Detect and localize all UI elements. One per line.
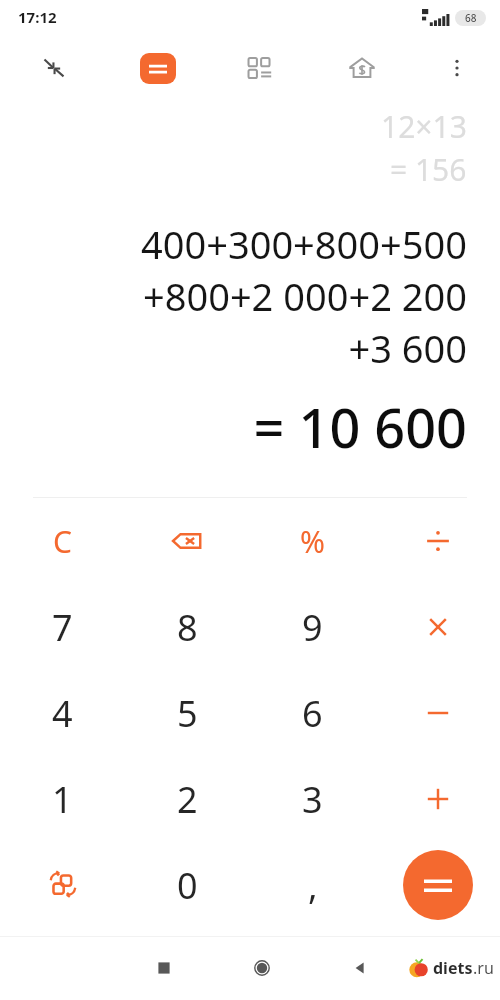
staticText: 2 — [177, 775, 198, 824]
button[interactable]: Backspace — [125, 498, 250, 584]
staticText: % — [300, 521, 325, 562]
staticText: 6 — [302, 689, 323, 738]
button[interactable]: Multiply — [375, 584, 500, 670]
button[interactable]: Recents — [130, 936, 198, 1000]
staticText: 17:12 — [18, 7, 57, 27]
staticText: 12×13 — [381, 106, 467, 147]
button[interactable]: Collapse — [0, 34, 107, 102]
button[interactable]: Back — [325, 936, 394, 1000]
button[interactable]: 8 — [125, 584, 250, 670]
button[interactable]: % — [250, 498, 375, 584]
button[interactable]: Home — [227, 936, 296, 1000]
button[interactable]: Plus — [375, 756, 500, 842]
staticText: , — [308, 861, 318, 910]
button[interactable]: Divide — [375, 498, 500, 584]
staticText: .ru — [473, 957, 494, 979]
button[interactable]: Minus — [375, 670, 500, 756]
button[interactable]: Calculator — [140, 53, 176, 84]
staticText: 7 — [52, 603, 73, 652]
staticText: 3 — [302, 775, 323, 824]
button[interactable]: Mortgage calculator — [311, 34, 413, 102]
staticText: C — [53, 521, 72, 562]
staticText: = 156 — [390, 149, 467, 190]
button[interactable]: Convert units — [0, 842, 125, 928]
staticText: +800+2 000+2 200 — [33, 270, 467, 322]
button[interactable]: 4 — [0, 670, 125, 756]
staticText: diets — [433, 957, 473, 979]
button[interactable]: Unit converter — [209, 34, 311, 102]
button[interactable]: 6 — [250, 670, 375, 756]
staticText: 9 — [302, 603, 323, 652]
button[interactable]: 2 — [125, 756, 250, 842]
staticText: 8 — [177, 603, 198, 652]
button[interactable]: 3 — [250, 756, 375, 842]
staticText: 5 — [177, 689, 198, 738]
button[interactable]: 9 — [250, 584, 375, 670]
button[interactable]: 7 — [0, 584, 125, 670]
button[interactable]: 0 — [125, 842, 250, 928]
button[interactable]: More options — [413, 34, 500, 102]
button[interactable]: Equals — [403, 850, 473, 920]
staticText: 400+300+800+500 — [33, 218, 467, 270]
staticText: 0 — [177, 861, 198, 910]
button[interactable]: 1 — [0, 756, 125, 842]
button[interactable]: 5 — [125, 670, 250, 756]
staticText: +3 600 — [33, 322, 467, 374]
staticText: 4 — [52, 689, 73, 738]
staticText: 68 — [465, 11, 477, 25]
button[interactable]: , — [250, 842, 375, 928]
staticText: 1 — [52, 775, 73, 824]
button[interactable]: C — [0, 498, 125, 584]
staticText: = 10 600 — [33, 390, 467, 464]
